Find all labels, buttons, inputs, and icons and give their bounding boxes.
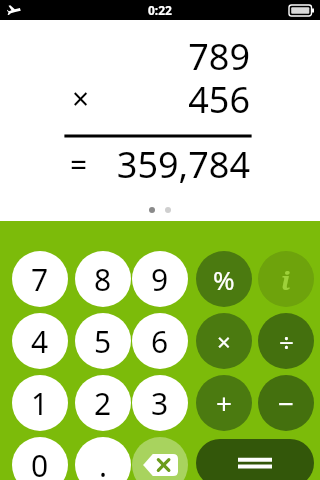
button[interactable]: × — [196, 313, 252, 369]
staticText: 456 — [188, 75, 250, 124]
button[interactable]: 6 — [132, 313, 188, 369]
button[interactable]: 5 — [75, 313, 131, 369]
staticText: 0:22 — [148, 2, 172, 18]
button[interactable]: + — [196, 375, 252, 431]
staticText: 4 — [31, 321, 49, 362]
staticText: 9 — [151, 259, 169, 300]
button[interactable]: 4 — [12, 313, 68, 369]
button[interactable]: 2 — [75, 375, 131, 431]
staticText: 7 — [31, 259, 49, 300]
staticText: 0 — [31, 445, 49, 480]
button[interactable]: 7 — [12, 251, 68, 307]
button[interactable]: ÷ — [258, 313, 314, 369]
staticText: 8 — [94, 259, 112, 300]
staticText: % — [213, 262, 235, 297]
staticText: 359,784 — [116, 140, 250, 189]
staticText: 5 — [94, 321, 112, 362]
staticText: + — [216, 384, 233, 422]
staticText: = — [70, 144, 88, 185]
staticText: − — [278, 384, 295, 422]
staticText: × — [72, 78, 90, 119]
button[interactable]: Info — [258, 251, 314, 307]
button[interactable]: 3 — [132, 375, 188, 431]
staticText: ÷ — [279, 324, 294, 359]
button[interactable]: 8 — [75, 251, 131, 307]
staticText: . — [99, 445, 108, 480]
staticText: 3 — [151, 383, 169, 424]
staticText: i — [281, 262, 291, 297]
button[interactable]: % — [196, 251, 252, 307]
button[interactable]: . — [75, 437, 131, 480]
button[interactable]: 0 — [12, 437, 68, 480]
button[interactable]: − — [258, 375, 314, 431]
staticText: 2 — [94, 383, 112, 424]
button[interactable]: Delete — [132, 437, 188, 480]
staticText: 1 — [31, 383, 49, 424]
button[interactable]: 9 — [132, 251, 188, 307]
button[interactable]: 1 — [12, 375, 68, 431]
button[interactable] — [196, 439, 314, 480]
staticText: 789 — [188, 32, 250, 81]
staticText: × — [217, 325, 231, 358]
staticText: 6 — [151, 321, 169, 362]
